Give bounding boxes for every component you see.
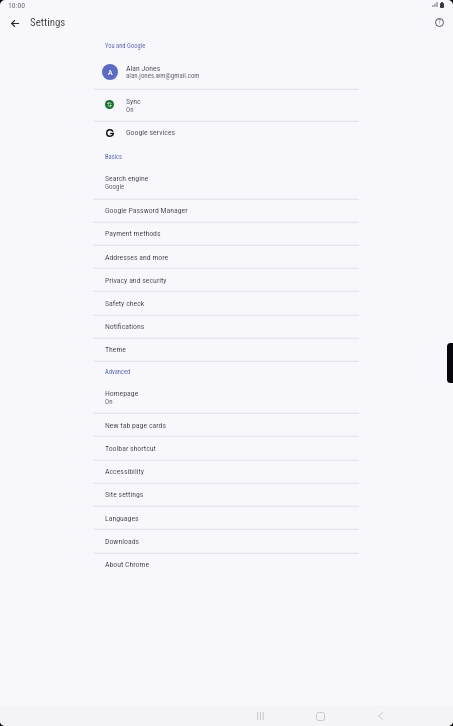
button[interactable] <box>93 382 359 414</box>
staticText: Advanced <box>105 368 131 376</box>
staticText: alan.jones.wm@gmail.com <box>126 72 200 80</box>
staticText: Toolbar shortcut <box>105 444 156 453</box>
staticText: Search engine <box>105 174 149 183</box>
button[interactable]: Back <box>360 706 400 726</box>
staticText: Google services <box>126 128 176 137</box>
staticText: ? <box>438 18 441 26</box>
button[interactable] <box>93 315 359 337</box>
staticText: Addresses and more <box>105 253 169 262</box>
staticText: Sync <box>126 97 141 106</box>
staticText: Settings <box>30 16 66 29</box>
staticText: On <box>105 398 113 406</box>
staticText: On <box>126 106 134 114</box>
button[interactable] <box>93 414 359 436</box>
button[interactable] <box>93 553 359 575</box>
button[interactable] <box>93 199 359 221</box>
staticText: Languages <box>105 514 139 523</box>
staticText: Safety check <box>105 299 145 308</box>
button[interactable] <box>93 90 359 121</box>
button[interactable] <box>93 223 359 245</box>
staticText: Google <box>105 183 125 191</box>
staticText: A <box>108 68 113 77</box>
button[interactable] <box>93 292 359 314</box>
button[interactable]: Help and feedback <box>428 11 450 33</box>
button[interactable] <box>93 530 359 552</box>
button[interactable]: Navigate up <box>4 12 26 34</box>
staticText: You and Google <box>105 42 146 50</box>
button[interactable]: Home <box>300 706 340 726</box>
staticText: Theme <box>105 345 127 354</box>
button[interactable] <box>93 338 359 360</box>
button[interactable] <box>93 507 359 529</box>
staticText: Google Password Manager <box>105 206 188 215</box>
button[interactable] <box>93 58 359 90</box>
staticText: Accessibility <box>105 467 145 476</box>
button[interactable]: Recents <box>240 706 280 726</box>
button[interactable] <box>93 460 359 482</box>
button[interactable] <box>93 167 359 199</box>
staticText: 10:00 <box>8 1 25 10</box>
staticText: Alan Jones <box>126 64 161 73</box>
staticText: About Chrome <box>105 560 150 569</box>
staticText: New tab page cards <box>105 421 166 430</box>
staticText: Payment methods <box>105 229 161 238</box>
staticText: Homepage <box>105 389 139 398</box>
staticText: Downloads <box>105 537 140 546</box>
staticText: Privacy and security <box>105 276 167 285</box>
staticText: Site settings <box>105 490 144 499</box>
staticText: Basics <box>105 153 123 161</box>
button[interactable] <box>93 437 359 459</box>
staticText: Notifications <box>105 322 145 331</box>
button[interactable] <box>93 246 359 268</box>
button[interactable] <box>93 122 359 145</box>
button[interactable] <box>93 484 359 506</box>
button[interactable] <box>93 269 359 291</box>
